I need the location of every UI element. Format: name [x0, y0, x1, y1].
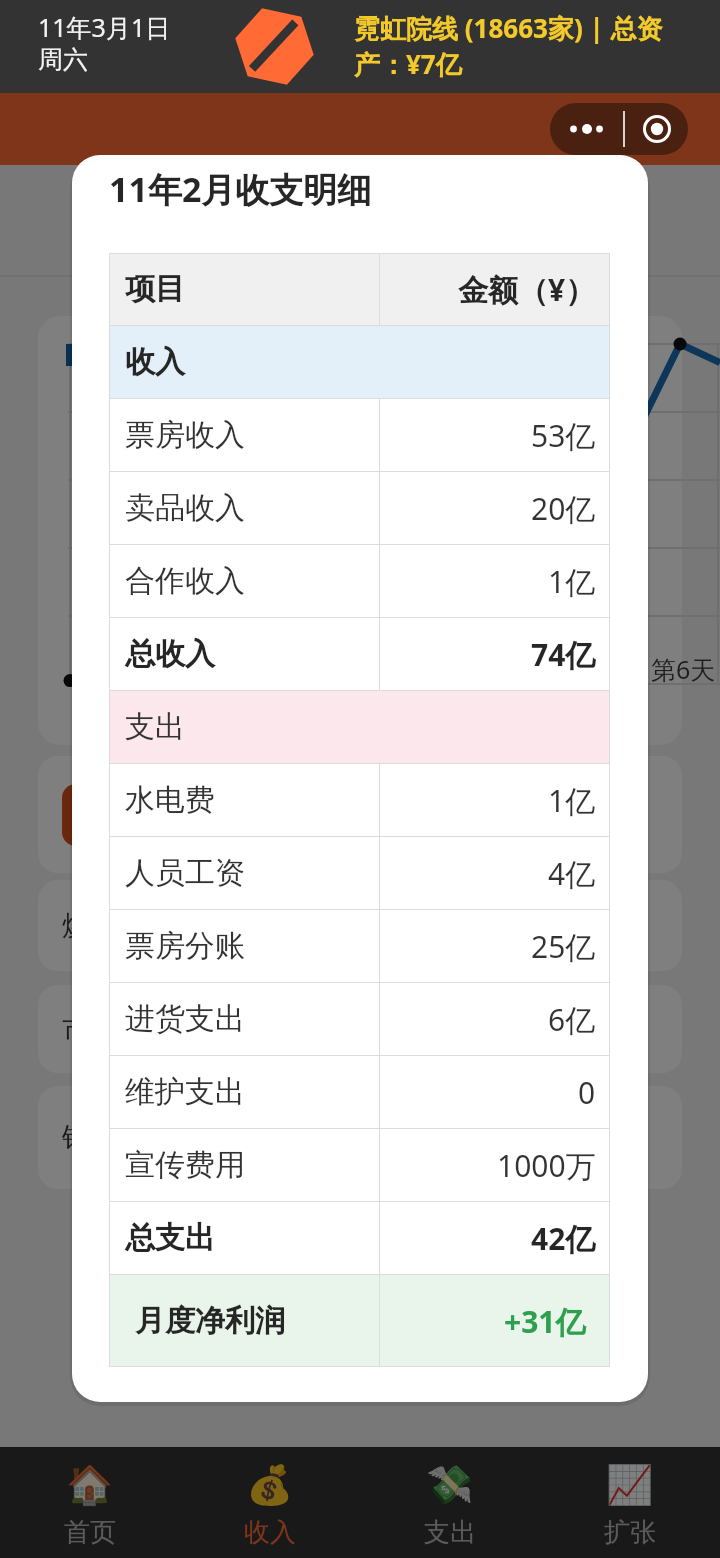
staticText: 扩张 [604, 1516, 656, 1549]
staticText: 首页 [64, 1516, 116, 1549]
staticText: 水电费 [125, 781, 215, 819]
staticText: 烧烤摊 [62, 908, 146, 943]
staticText: 票房收入 [125, 416, 245, 454]
staticText: 收入 [125, 343, 185, 381]
button[interactable]: 银行 [38, 1086, 682, 1189]
staticText: +31亿 [504, 1301, 586, 1342]
staticText: 票房分账 [125, 927, 245, 965]
staticText: 银行 [62, 1120, 118, 1155]
staticText: 11年2月收支明细 [109, 166, 372, 212]
staticText: 霓虹院线 (18663家) | 总资产：¥7亿 [354, 10, 666, 82]
staticText: 25亿 [531, 926, 596, 967]
staticText: 合作收入 [125, 562, 245, 600]
staticText: 6亿 [548, 999, 596, 1040]
staticText: 1000万 [497, 1145, 596, 1186]
button[interactable]: More options [550, 103, 623, 155]
button[interactable]: 📈 [540, 1447, 720, 1558]
staticText: 进货支出 [125, 1000, 245, 1038]
staticText: 1亿 [548, 561, 596, 602]
staticText: 市场 [62, 1012, 118, 1047]
button[interactable]: 💸 [360, 1447, 540, 1558]
staticText: 人员工资 [125, 854, 245, 892]
staticText: 53亿 [531, 415, 596, 456]
staticText: 项目 [125, 270, 185, 308]
staticText: 42亿 [531, 1218, 596, 1259]
staticText: 4亿 [548, 853, 596, 894]
staticText: 金额（¥） [458, 269, 596, 310]
staticText: 📈 [606, 1463, 654, 1508]
staticText: 宣传费用 [125, 1146, 245, 1184]
staticText: 月度净利润 [135, 1302, 285, 1340]
staticText: 74亿 [531, 634, 596, 675]
staticText: 💸 [426, 1463, 474, 1508]
button[interactable]: Close mini program [625, 103, 688, 155]
staticText: 卖品收入 [125, 489, 245, 527]
button[interactable]: 💰 [180, 1447, 360, 1558]
staticText: 维护支出 [125, 1073, 245, 1111]
button[interactable]: 烧烤摊 [38, 880, 682, 971]
staticText: 💰 [246, 1463, 294, 1508]
staticText: 1亿 [548, 780, 596, 821]
staticText: 🏠 [66, 1463, 114, 1508]
staticText: 总支出 [125, 1219, 215, 1257]
staticText: 20亿 [531, 488, 596, 529]
staticText: 总收入 [125, 635, 215, 673]
button[interactable] [38, 756, 682, 873]
staticText: 收入 [244, 1516, 296, 1549]
staticText: 支出 [125, 708, 185, 746]
button[interactable]: 市场 [38, 985, 682, 1073]
staticText: 周六 [38, 44, 88, 75]
staticText: 第6天 [651, 652, 716, 686]
staticText: 11年3月1日 [38, 10, 171, 44]
button[interactable]: 🏠 [0, 1447, 180, 1558]
staticText: 0 [578, 1072, 596, 1113]
staticText: 支出 [424, 1516, 476, 1549]
